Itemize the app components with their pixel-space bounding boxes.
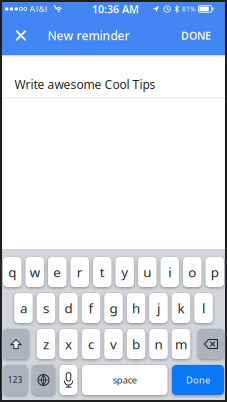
staticText: q <box>8 263 16 281</box>
staticText: l <box>202 299 205 317</box>
button[interactable]: w <box>25 257 44 287</box>
staticText: w <box>30 263 40 281</box>
staticText: h <box>132 299 140 317</box>
staticText: z <box>43 335 49 353</box>
button[interactable]: r <box>70 257 89 287</box>
button[interactable]: Done <box>172 365 224 395</box>
button[interactable]: x <box>59 329 78 359</box>
button[interactable]: Shift <box>3 329 29 359</box>
staticText: i <box>168 263 171 281</box>
button[interactable]: Close <box>2 16 26 55</box>
button[interactable]: f <box>82 293 100 323</box>
button[interactable]: m <box>172 329 190 359</box>
staticText: AT&T <box>30 4 48 14</box>
button[interactable]: Next keyboard <box>32 365 55 395</box>
button[interactable]: Dictate <box>59 365 77 395</box>
staticText: x <box>65 335 72 353</box>
button[interactable]: o <box>183 257 201 287</box>
button[interactable]: n <box>149 329 168 359</box>
staticText: 81% <box>182 5 196 13</box>
button[interactable]: y <box>115 257 134 287</box>
button[interactable]: Delete <box>198 329 224 359</box>
button[interactable]: z <box>37 329 55 359</box>
staticText: o <box>188 263 196 281</box>
staticText: a <box>20 299 27 317</box>
button[interactable]: t <box>93 257 111 287</box>
button[interactable]: c <box>82 329 100 359</box>
button[interactable]: u <box>138 257 156 287</box>
button[interactable]: k <box>172 293 190 323</box>
button[interactable]: d <box>59 293 78 323</box>
staticText: b <box>132 335 140 353</box>
staticText: e <box>53 263 61 281</box>
button[interactable]: b <box>127 329 145 359</box>
button[interactable]: l <box>194 293 213 323</box>
button[interactable]: p <box>205 257 224 287</box>
staticText: j <box>157 299 160 317</box>
button[interactable]: g <box>104 293 123 323</box>
staticText: f <box>88 299 93 317</box>
button[interactable]: space <box>82 365 167 395</box>
button[interactable]: DONE <box>181 15 225 56</box>
staticText: v <box>110 335 117 353</box>
staticText: u <box>143 263 151 281</box>
staticText: DONE <box>181 28 211 43</box>
staticText: m <box>175 335 187 353</box>
button[interactable]: v <box>104 329 123 359</box>
button[interactable]: e <box>48 257 66 287</box>
staticText: c <box>88 335 94 353</box>
staticText: Done <box>186 374 210 386</box>
staticText: r <box>77 263 83 281</box>
staticText: k <box>177 299 184 317</box>
button[interactable]: h <box>127 293 145 323</box>
staticText: 10:36 AM <box>92 2 139 16</box>
staticText: space <box>113 374 137 386</box>
button[interactable]: a <box>14 293 33 323</box>
staticText: 123 <box>8 375 23 385</box>
staticText: t <box>100 263 105 281</box>
button[interactable]: q <box>3 257 21 287</box>
staticText: New reminder <box>48 27 130 43</box>
staticText: n <box>154 335 162 353</box>
button[interactable]: Reminder title <box>2 57 225 97</box>
staticText: s <box>43 299 49 317</box>
button[interactable]: Numbers <box>3 365 27 395</box>
staticText: g <box>109 299 117 317</box>
staticText: y <box>121 263 128 281</box>
staticText: Write awesome Cool Tips <box>14 76 155 92</box>
button[interactable]: i <box>160 257 179 287</box>
staticText: d <box>64 299 72 317</box>
button[interactable]: s <box>37 293 55 323</box>
button[interactable]: j <box>149 293 168 323</box>
staticText: p <box>211 263 219 281</box>
